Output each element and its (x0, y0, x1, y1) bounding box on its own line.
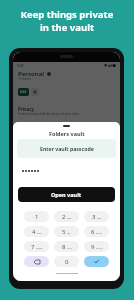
button[interactable]: 2 (54, 211, 79, 222)
staticText: DEF (97, 216, 102, 219)
staticText: 9 (91, 243, 95, 251)
staticText: 0 (65, 258, 69, 266)
staticText: 7 (31, 243, 35, 251)
staticText: 6 (91, 228, 95, 236)
staticText: Add (20, 90, 27, 94)
staticText: Personal (18, 70, 45, 78)
button[interactable]: 1 (24, 211, 49, 222)
staticText: JKL (67, 231, 71, 234)
staticText: ABC (67, 216, 72, 219)
staticText: Keep things private in the vault (0, 8, 134, 34)
button[interactable]: 7 (24, 241, 49, 252)
button[interactable]: Add (18, 88, 29, 96)
staticText: Folders vault (49, 130, 85, 137)
button[interactable]: 9 (84, 241, 109, 252)
staticText: 2 (62, 213, 66, 221)
button[interactable]: Enter vault passcode (17, 139, 116, 158)
staticText: Enter vault passcode (40, 145, 94, 152)
staticText: PQRS (36, 246, 43, 249)
button[interactable]: 4 (24, 226, 49, 237)
staticText: 3 (92, 213, 96, 221)
button[interactable]: 0 (54, 256, 79, 267)
button[interactable]: Backspace (24, 256, 49, 267)
staticText: 5 (62, 228, 66, 236)
button[interactable]: 3 (84, 211, 109, 222)
staticText: 1 (35, 213, 39, 221)
button[interactable]: 8 (54, 241, 79, 252)
staticText: 15 items (18, 77, 31, 81)
staticText: Open vault (51, 191, 82, 198)
button[interactable]: Open vault (18, 187, 115, 202)
button[interactable]: Confirm (84, 256, 109, 267)
staticText: Privacy (18, 106, 34, 112)
button[interactable] (31, 88, 39, 96)
button[interactable]: 6 (84, 226, 109, 237)
staticText: Control privacy and disclosure of your d… (18, 112, 79, 116)
button[interactable]: 5 (54, 226, 79, 237)
staticText: 4 (32, 228, 36, 236)
staticText: 8 (62, 243, 66, 251)
staticText: WXYZ (96, 246, 103, 249)
staticText: TUV (67, 246, 72, 249)
staticText: MNO (96, 231, 103, 234)
staticText: 9:41 (17, 63, 24, 67)
staticText: GHI (37, 231, 42, 234)
